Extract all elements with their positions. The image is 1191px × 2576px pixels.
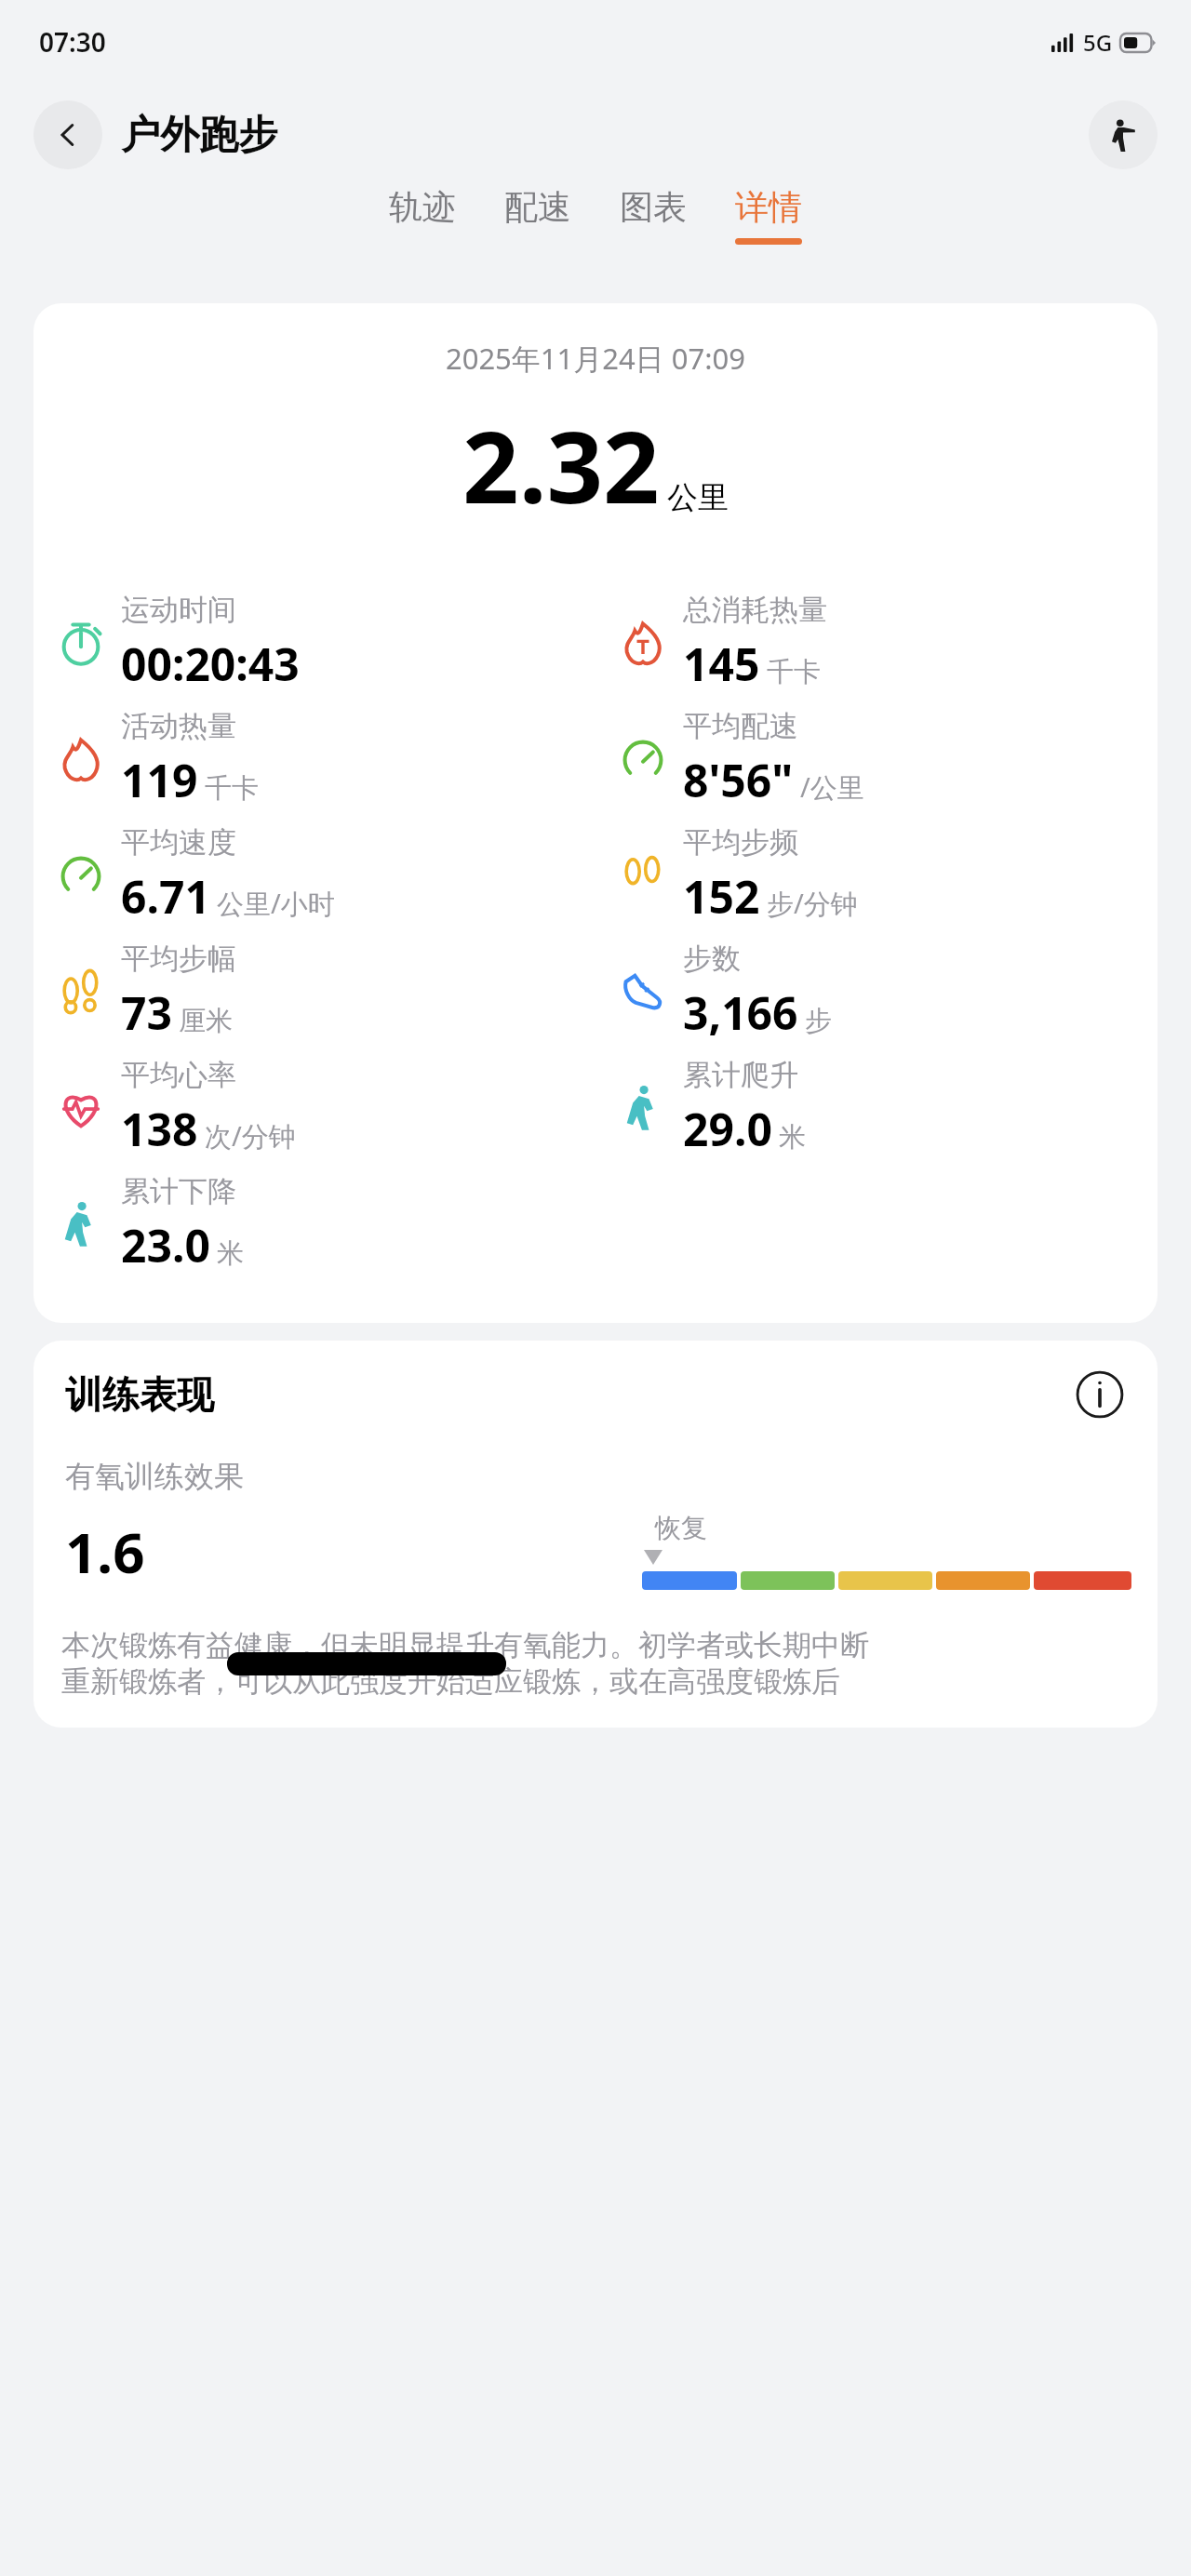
staticText: 总消耗热量 — [683, 592, 827, 628]
staticText: /公里 — [800, 768, 864, 806]
button[interactable]: 平均步幅 — [33, 933, 595, 1049]
button[interactable]: Info — [1074, 1368, 1126, 1421]
staticText: 2.32 — [462, 398, 660, 532]
staticText: 07:30 — [39, 24, 106, 60]
staticText: 29.0 — [683, 1099, 772, 1159]
staticText: 重新锻炼者，可以从此强度开始适应锻炼，或在高强度锻炼后 — [61, 1663, 840, 1700]
button[interactable]: Back — [33, 100, 102, 169]
staticText: 米 — [779, 1120, 806, 1155]
button[interactable]: 平均配速 — [595, 701, 1158, 817]
button[interactable]: Share — [1089, 100, 1158, 169]
staticText: 累计下降 — [121, 1173, 236, 1209]
staticText: 平均心率 — [121, 1057, 236, 1093]
button[interactable]: 图表 — [620, 186, 687, 238]
staticText: 配速 — [504, 186, 571, 228]
staticText: 平均速度 — [121, 824, 236, 861]
staticText: 次/分钟 — [205, 1117, 296, 1155]
staticText: 公里/小时 — [217, 885, 335, 922]
staticText: 千卡 — [767, 655, 821, 689]
button[interactable]: 运动时间 — [33, 584, 595, 701]
button[interactable]: 详情 — [735, 186, 802, 245]
staticText: 步数 — [683, 941, 741, 977]
staticText: 厘米 — [179, 1004, 233, 1038]
staticText: 累计爬升 — [683, 1057, 798, 1093]
staticText: 图表 — [620, 186, 687, 228]
staticText: 有氧训练效果 — [65, 1458, 244, 1495]
button[interactable]: 累计下降 — [33, 1166, 595, 1282]
staticText: 米 — [217, 1236, 244, 1271]
button[interactable]: 步数 — [595, 933, 1158, 1049]
staticText: 145 — [683, 634, 760, 694]
staticText: 运动时间 — [121, 592, 236, 628]
button[interactable]: 平均步频 — [595, 817, 1158, 933]
staticText: 活动热量 — [121, 708, 236, 744]
staticText: 训练表现 — [65, 1371, 214, 1418]
button[interactable]: 活动热量 — [33, 701, 595, 817]
staticText: 轨迹 — [389, 186, 456, 228]
staticText: 5G — [1083, 27, 1113, 58]
button[interactable]: 平均速度 — [33, 817, 595, 933]
staticText: 2025年11月24日 07:09 — [33, 339, 1158, 378]
staticText: 6.71 — [121, 866, 210, 927]
staticText: 3,166 — [683, 982, 798, 1043]
staticText: 23.0 — [121, 1215, 210, 1275]
staticText: 步/分钟 — [767, 885, 858, 922]
button[interactable]: 累计爬升 — [595, 1049, 1158, 1166]
staticText: 本次锻炼有益健康，但未明显提升有氧能力。初学者或长期中断 — [61, 1627, 869, 1663]
staticText: 138 — [121, 1099, 198, 1159]
staticText: 详情 — [735, 186, 802, 228]
staticText: 平均步频 — [683, 824, 798, 861]
staticText: 00:20:43 — [121, 634, 300, 694]
button[interactable]: 平均心率 — [33, 1049, 595, 1166]
staticText: 1.6 — [65, 1514, 145, 1590]
staticText: 千卡 — [205, 771, 259, 806]
staticText: 平均步幅 — [121, 941, 236, 977]
staticText: 步 — [805, 1004, 832, 1038]
button[interactable]: 轨迹 — [389, 186, 456, 238]
staticText: 152 — [683, 866, 760, 927]
staticText: 恢复 — [655, 1512, 707, 1544]
staticText: 户外跑步 — [121, 111, 277, 160]
staticText: 平均配速 — [683, 708, 798, 744]
button[interactable]: 配速 — [504, 186, 571, 238]
button[interactable]: 总消耗热量 — [595, 584, 1158, 701]
staticText: 73 — [121, 982, 172, 1043]
staticText: 公里 — [667, 478, 729, 517]
staticText: 119 — [121, 750, 198, 810]
staticText: 8'56" — [683, 750, 794, 810]
